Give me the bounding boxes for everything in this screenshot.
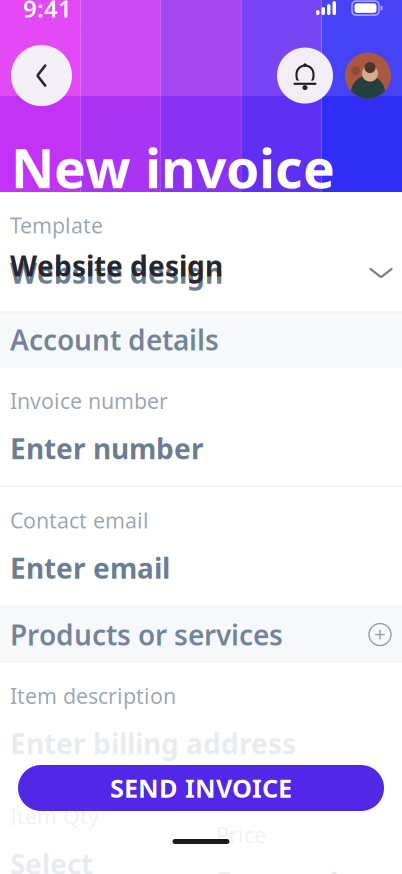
button[interactable]: Price bbox=[216, 821, 392, 874]
button[interactable]: Contact email bbox=[0, 487, 402, 606]
staticText: Enter email bbox=[10, 549, 170, 587]
staticText: Item description bbox=[10, 681, 176, 710]
button[interactable]: Back bbox=[11, 45, 72, 106]
button[interactable]: Profile bbox=[345, 53, 391, 99]
staticText: SEND INVOICE bbox=[110, 771, 292, 805]
staticText: New invoice bbox=[11, 132, 335, 203]
button[interactable]: SEND INVOICE bbox=[18, 765, 384, 811]
button[interactable]: Invoice number bbox=[0, 367, 402, 487]
staticText: Products or services bbox=[10, 616, 283, 653]
staticText: Contact email bbox=[10, 506, 149, 534]
staticText: Account details bbox=[10, 321, 219, 358]
staticText: Template bbox=[10, 211, 103, 239]
staticText: Invoice number bbox=[10, 386, 168, 415]
staticText: Enter number bbox=[10, 430, 204, 467]
staticText: Price bbox=[216, 821, 266, 849]
staticText: Website design bbox=[10, 254, 223, 291]
button[interactable]: Notifications bbox=[277, 48, 333, 104]
button[interactable]: Template bbox=[0, 192, 402, 311]
staticText: Item Qty bbox=[10, 802, 99, 830]
staticText: Website design bbox=[10, 247, 223, 284]
button[interactable]: Item Qty bbox=[10, 802, 216, 874]
button[interactable]: Item description bbox=[0, 662, 402, 782]
staticText: 9:41 bbox=[23, 0, 72, 24]
button[interactable]: Add item bbox=[356, 622, 392, 646]
staticText: Enter billing address bbox=[10, 725, 296, 762]
staticText: Select amount bbox=[10, 845, 120, 874]
